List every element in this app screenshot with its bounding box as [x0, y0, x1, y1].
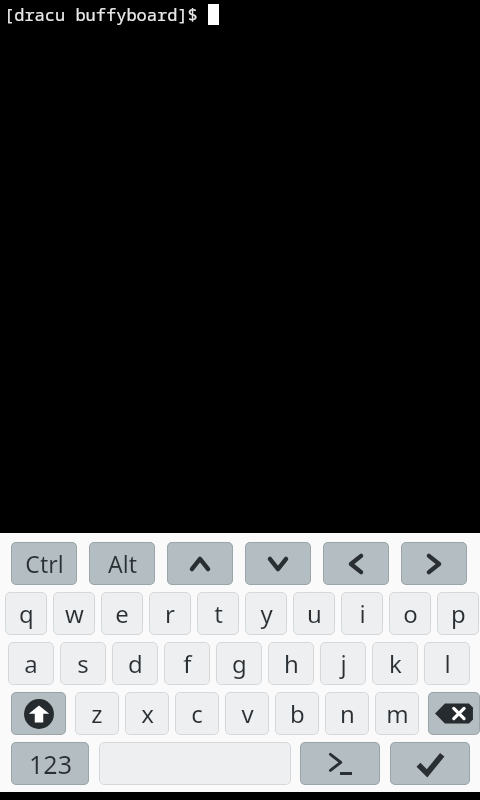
button[interactable]: o — [389, 592, 431, 635]
button[interactable]: 123 — [11, 742, 89, 785]
staticText: [dracu buffyboard]$ — [4, 3, 208, 26]
staticText: j — [340, 647, 347, 680]
button[interactable]: Terminal prompt — [300, 742, 380, 785]
staticText: q — [19, 597, 34, 630]
button[interactable]: z — [75, 692, 119, 735]
staticText: z — [91, 697, 103, 730]
button[interactable]: b — [275, 692, 319, 735]
button[interactable]: u — [293, 592, 335, 635]
button[interactable]: w — [53, 592, 95, 635]
staticText: r — [165, 597, 175, 630]
staticText: Ctrl — [25, 548, 64, 579]
button[interactable]: Shift — [11, 692, 66, 735]
button[interactable]: s — [60, 642, 106, 685]
button[interactable]: n — [325, 692, 369, 735]
button[interactable]: Alt — [89, 542, 155, 585]
button[interactable]: Arrow up — [167, 542, 233, 585]
button[interactable]: Space — [99, 742, 291, 785]
staticText: c — [191, 697, 203, 730]
button[interactable]: v — [225, 692, 269, 735]
staticText: d — [128, 647, 143, 680]
staticText: g — [232, 647, 247, 680]
staticText: w — [65, 597, 84, 630]
staticText: u — [307, 597, 322, 630]
staticText: v — [241, 697, 254, 730]
button[interactable]: e — [101, 592, 143, 635]
button[interactable]: a — [8, 642, 54, 685]
button[interactable]: q — [5, 592, 47, 635]
staticText: p — [451, 597, 466, 630]
button[interactable]: m — [375, 692, 419, 735]
staticText: n — [340, 697, 355, 730]
button[interactable]: c — [175, 692, 219, 735]
button[interactable]: l — [424, 642, 470, 685]
button[interactable]: f — [164, 642, 210, 685]
button[interactable]: p — [437, 592, 479, 635]
button[interactable]: y — [245, 592, 287, 635]
staticText: 123 — [29, 747, 72, 781]
staticText: b — [290, 697, 305, 730]
button[interactable]: k — [372, 642, 418, 685]
staticText: i — [359, 597, 366, 630]
staticText: f — [183, 647, 192, 680]
staticText: s — [77, 647, 89, 680]
staticText: x — [141, 697, 154, 730]
button[interactable]: t — [197, 592, 239, 635]
staticText: a — [24, 647, 38, 680]
staticText: o — [403, 597, 418, 630]
staticText: k — [389, 647, 402, 680]
button[interactable]: Backspace — [428, 692, 480, 735]
button[interactable]: j — [320, 642, 366, 685]
button[interactable]: Arrow left — [323, 542, 389, 585]
staticText: l — [444, 647, 451, 680]
button[interactable]: g — [216, 642, 262, 685]
staticText: e — [115, 597, 129, 630]
button[interactable]: x — [125, 692, 169, 735]
staticText: h — [284, 647, 299, 680]
button[interactable]: h — [268, 642, 314, 685]
button[interactable]: Enter — [390, 742, 470, 785]
button[interactable]: i — [341, 592, 383, 635]
button[interactable]: d — [112, 642, 158, 685]
button[interactable]: Arrow down — [245, 542, 311, 585]
button[interactable]: Ctrl — [11, 542, 77, 585]
staticText: m — [386, 697, 409, 730]
staticText: Alt — [108, 548, 137, 579]
staticText: y — [260, 597, 273, 630]
button[interactable]: r — [149, 592, 191, 635]
staticText: t — [214, 597, 223, 630]
button[interactable]: Arrow right — [401, 542, 467, 585]
